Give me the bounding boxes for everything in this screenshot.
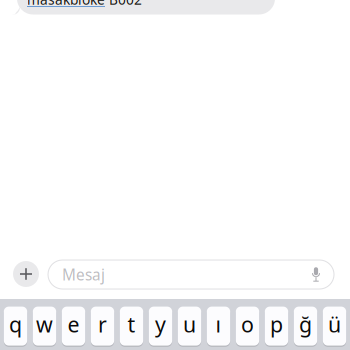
staticText: Mesaj — [62, 264, 105, 285]
button[interactable]: q — [4, 306, 27, 346]
button[interactable]: ı — [207, 306, 230, 346]
button[interactable]: ğ — [294, 306, 317, 346]
staticText: o — [241, 310, 254, 339]
staticText: ü — [328, 310, 341, 339]
button[interactable]: u — [178, 306, 201, 346]
staticText: r — [98, 310, 107, 339]
staticText: q — [9, 310, 22, 339]
staticText: y — [155, 310, 166, 339]
staticText: ğ — [299, 310, 312, 339]
button[interactable]: w — [33, 306, 56, 346]
staticText: w — [36, 310, 53, 339]
button[interactable]: t — [120, 306, 143, 346]
staticText: u — [183, 310, 196, 339]
button[interactable]: r — [91, 306, 114, 346]
staticText: ı — [215, 310, 221, 339]
staticText: e — [67, 310, 79, 339]
button[interactable]: Mesaj — [48, 260, 334, 289]
button[interactable]: o — [236, 306, 259, 346]
button[interactable]: p — [265, 306, 288, 346]
staticText: masakbloke B002 — [27, 0, 142, 9]
button[interactable]: ü — [323, 306, 346, 346]
button[interactable]: Add attachment — [4, 252, 48, 296]
staticText: p — [270, 310, 283, 339]
button[interactable]: y — [149, 306, 172, 346]
button[interactable]: e — [62, 306, 85, 346]
staticText: t — [127, 310, 135, 339]
